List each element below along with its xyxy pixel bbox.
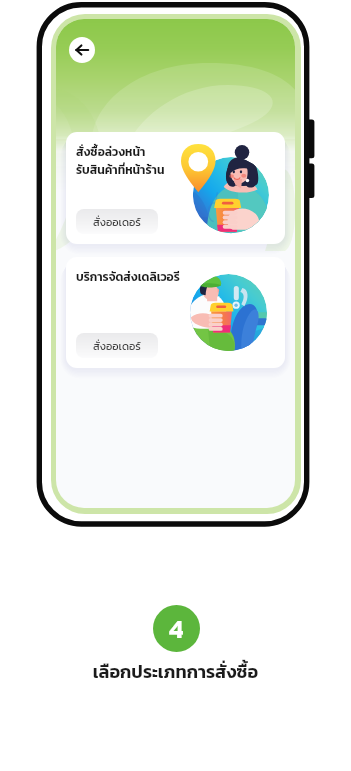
staticText: สั่งซื้อล่วงหน้า bbox=[76, 143, 146, 161]
button[interactable]: สั่งออเดอร์ bbox=[76, 333, 158, 358]
button[interactable]: สั่งซื้อล่วงหน้า bbox=[66, 132, 285, 244]
button[interactable]: Back bbox=[69, 37, 95, 63]
button[interactable]: สั่งออเดอร์ bbox=[76, 209, 158, 234]
staticText: สั่งออเดอร์ bbox=[93, 214, 141, 230]
staticText: 4 bbox=[169, 609, 184, 648]
staticText: เลือกประเภทการสั่งซื้อ bbox=[0, 658, 351, 685]
staticText: รับสินค้าที่หน้าร้าน bbox=[76, 161, 165, 179]
staticText: บริการจัดส่งเดลิเวอรี bbox=[76, 268, 180, 286]
button[interactable]: บริการจัดส่งเดลิเวอรี bbox=[66, 257, 285, 368]
staticText: สั่งออเดอร์ bbox=[93, 338, 141, 354]
